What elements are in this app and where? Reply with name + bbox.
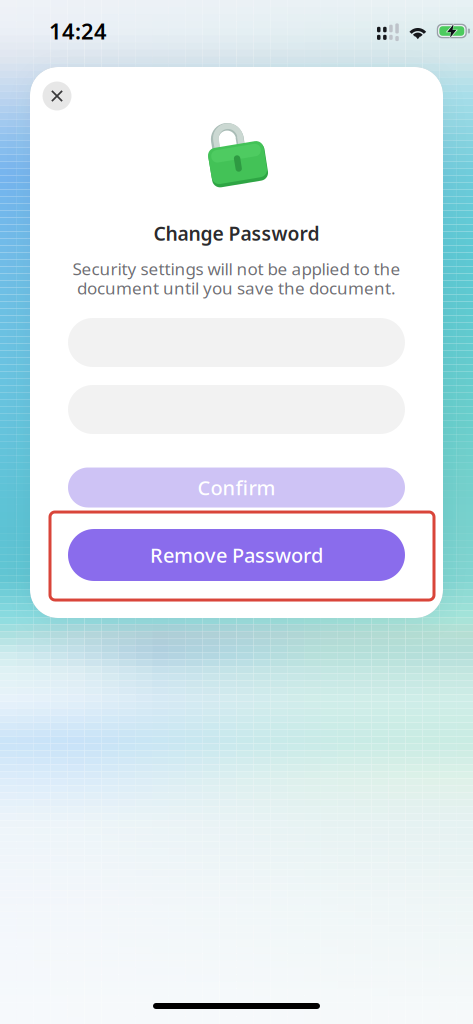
- staticText: Confirm: [197, 474, 275, 501]
- staticText: document until you save the document.: [77, 276, 396, 300]
- staticText: Security settings will not be applied to…: [72, 257, 400, 280]
- staticText: 14:24: [49, 16, 107, 46]
- button[interactable]: Remove Password: [68, 529, 405, 581]
- staticText: Change Password: [153, 220, 319, 246]
- button[interactable]: Close: [42, 81, 71, 110]
- staticText: Remove Password: [150, 541, 323, 569]
- button[interactable]: Confirm: [68, 467, 405, 507]
